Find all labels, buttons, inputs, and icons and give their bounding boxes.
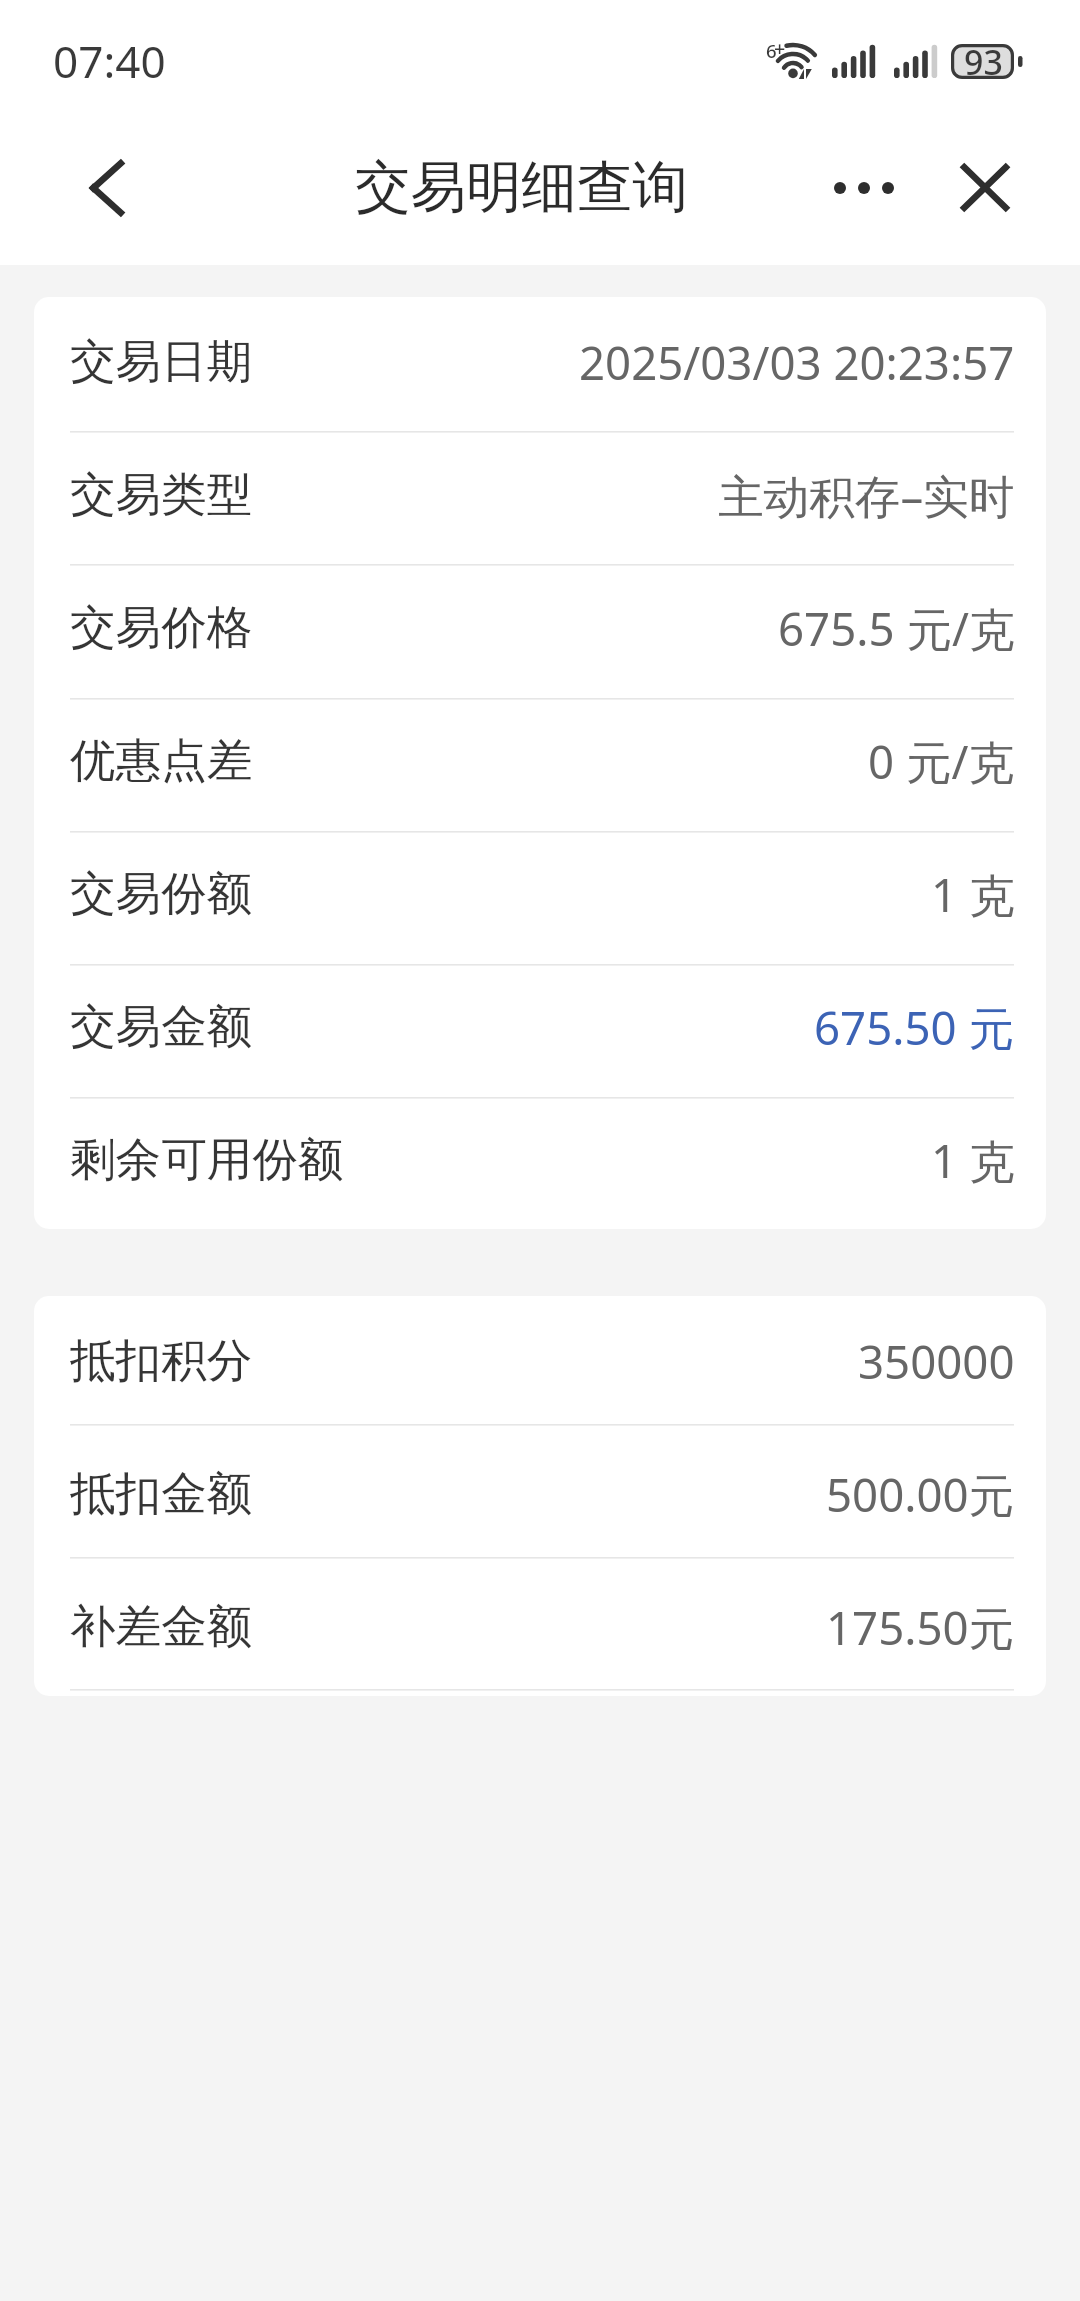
- button[interactable]: 补差金额: [34, 1562, 1046, 1695]
- staticText: 剩余可用份额: [70, 1131, 344, 1188]
- button[interactable]: Back: [0, 110, 214, 265]
- staticText: 175.50元: [826, 1596, 1015, 1658]
- button[interactable]: 交易类型: [34, 430, 1046, 563]
- staticText: 0 元/克: [868, 730, 1015, 792]
- staticText: 主动积存–实时: [718, 464, 1015, 526]
- staticText: 优惠点差: [70, 732, 253, 789]
- staticText: 1 克: [931, 1129, 1015, 1191]
- button[interactable]: 抵扣金额: [34, 1429, 1046, 1562]
- button[interactable]: 交易金额: [34, 962, 1046, 1095]
- button[interactable]: More options: [824, 110, 904, 265]
- staticText: 补差金额: [70, 1598, 253, 1655]
- staticText: 交易日期: [70, 333, 253, 390]
- staticText: 抵扣积分: [70, 1332, 253, 1389]
- staticText: 2025/03/03 20:23:57: [579, 331, 1015, 393]
- staticText: 交易份额: [70, 865, 253, 922]
- staticText: 交易金额: [70, 998, 253, 1055]
- staticText: 675.50 元: [814, 996, 1015, 1058]
- button[interactable]: Close: [945, 110, 1025, 265]
- button[interactable]: 交易价格: [34, 563, 1046, 696]
- button[interactable]: 剩余可用份额: [34, 1095, 1046, 1228]
- staticText: 07:40: [53, 31, 166, 91]
- staticText: 500.00元: [826, 1463, 1015, 1525]
- button[interactable]: 优惠点差: [34, 696, 1046, 829]
- staticText: 1 克: [931, 863, 1015, 925]
- staticText: 93: [964, 39, 1003, 85]
- button[interactable]: 交易份额: [34, 829, 1046, 962]
- button[interactable]: 抵扣积分: [34, 1296, 1046, 1429]
- staticText: 交易明细查询: [355, 153, 688, 223]
- staticText: 675.5 元/克: [778, 597, 1015, 659]
- staticText: 350000: [858, 1330, 1015, 1392]
- staticText: 交易类型: [70, 466, 253, 523]
- staticText: 抵扣金额: [70, 1465, 253, 1522]
- staticText: 交易价格: [70, 599, 253, 656]
- staticText: +: [774, 35, 786, 62]
- button[interactable]: 交易日期: [34, 297, 1046, 430]
- staticText: 6: [766, 38, 777, 63]
